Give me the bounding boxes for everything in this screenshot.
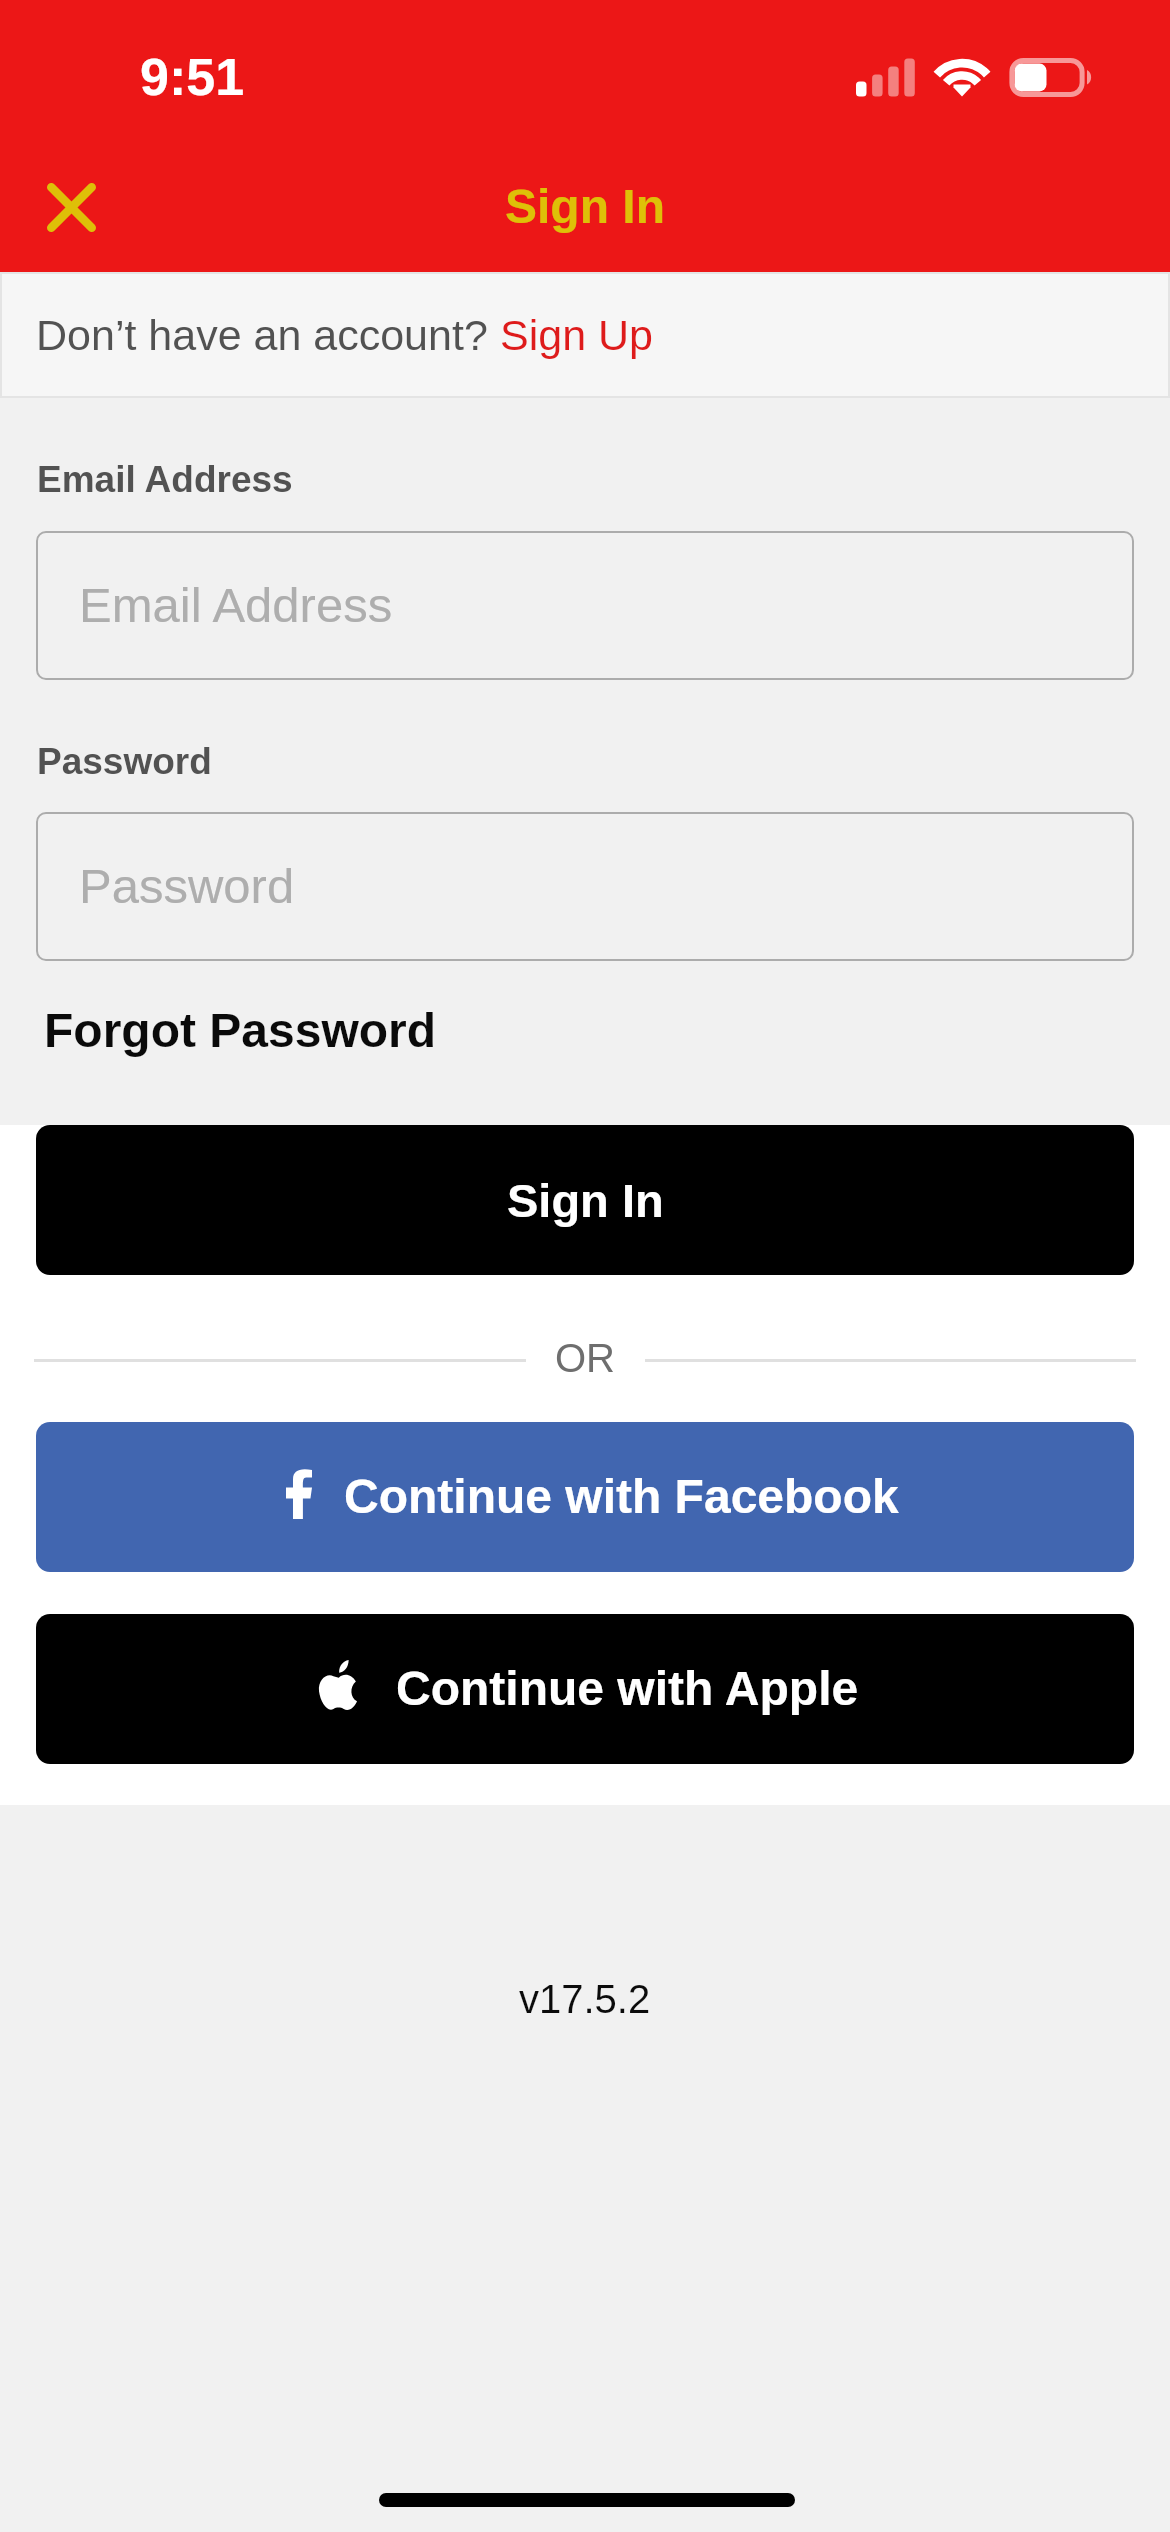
button[interactable]: Sign Up [500, 287, 653, 383]
button[interactable]: Password [36, 812, 1134, 961]
staticText: Password [79, 859, 295, 914]
button[interactable]: Email Address [36, 531, 1134, 680]
staticText: Forgot Password [44, 1004, 437, 1058]
staticText: 9:51 [140, 48, 245, 106]
staticText: Email Address [37, 459, 293, 500]
button[interactable]: Continue with Apple [36, 1614, 1134, 1764]
button[interactable]: Continue with Facebook [36, 1422, 1134, 1572]
staticText: Continue with Facebook [344, 1470, 899, 1524]
button[interactable]: Close [21, 157, 122, 258]
staticText: Don’t have an account? [36, 311, 500, 359]
staticText: OR [555, 1336, 615, 1381]
staticText: Continue with Apple [396, 1662, 859, 1716]
staticText: Email Address [79, 578, 393, 633]
staticText: Password [37, 741, 212, 782]
button[interactable]: Sign In [36, 1125, 1134, 1275]
staticText: Sign In [505, 180, 665, 234]
staticText: Sign Up [500, 311, 653, 359]
staticText: v17.5.2 [519, 1977, 651, 2022]
button[interactable]: Forgot Password [22, 993, 459, 1069]
staticText: Sign In [507, 1174, 664, 1227]
